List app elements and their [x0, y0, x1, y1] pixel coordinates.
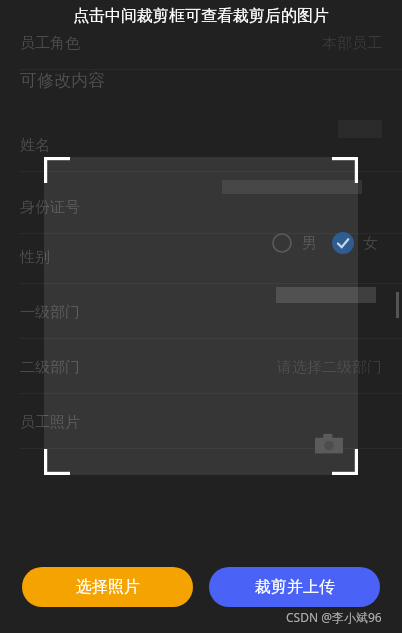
staticText: 员工角色: [20, 34, 80, 53]
staticText: 裁剪并上传: [255, 577, 335, 597]
staticText: 可修改内容: [20, 70, 105, 91]
staticText: 女: [363, 234, 378, 253]
staticText: 请选择二级部门: [277, 358, 382, 377]
staticText: 二级部门: [20, 358, 80, 377]
button[interactable]: 裁剪并上传: [209, 567, 380, 607]
button[interactable]: 二级部门: [0, 340, 402, 394]
staticText: 姓名: [20, 136, 50, 155]
staticText: 点击中间裁剪框可查看裁剪后的图片: [73, 6, 329, 26]
button[interactable]: 员工照片: [0, 395, 402, 449]
staticText: 男: [302, 234, 317, 253]
staticText: 一级部门: [20, 303, 80, 322]
button[interactable]: 员工角色: [0, 16, 402, 70]
staticText: 身份证号: [20, 198, 80, 217]
button[interactable]: 姓名: [0, 118, 402, 172]
button[interactable]: Camera: [314, 430, 344, 460]
button[interactable]: 性别: [0, 230, 402, 284]
staticText: 本部员工: [322, 34, 382, 53]
button[interactable]: 男: [268, 229, 296, 257]
staticText: 选择照片: [76, 577, 140, 597]
button[interactable]: 身份证号: [0, 180, 402, 234]
button[interactable]: 女: [329, 229, 357, 257]
button[interactable]: 选择照片: [22, 567, 193, 607]
staticText: CSDN @李小斌96: [286, 609, 382, 625]
staticText: 员工照片: [20, 413, 80, 432]
button[interactable]: [44, 157, 358, 475]
button[interactable]: 一级部门: [0, 285, 402, 339]
staticText: 性别: [20, 248, 50, 267]
